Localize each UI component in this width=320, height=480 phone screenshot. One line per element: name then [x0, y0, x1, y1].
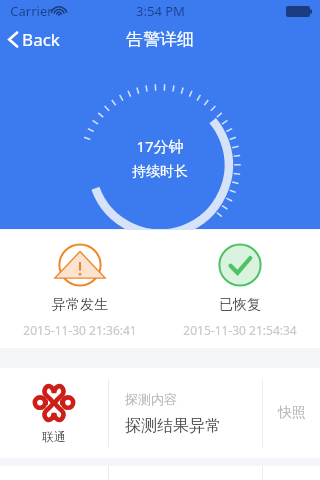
staticText: 持续时长	[132, 163, 188, 181]
staticText: 已恢复	[219, 296, 261, 314]
other: China Unicom	[34, 383, 74, 423]
staticText: 探测内容	[125, 391, 177, 407]
other: Recovered	[218, 243, 262, 287]
staticText: 异常发生	[52, 296, 108, 314]
staticText: 2015-11-30 21:36:41	[23, 322, 137, 338]
button[interactable]: Back	[0, 24, 70, 55]
staticText: Back	[22, 28, 60, 51]
button[interactable]: Alert occurred	[0, 230, 160, 348]
staticText: 快照	[278, 404, 306, 422]
staticText: 17分钟	[136, 136, 184, 156]
staticText: 告警详细	[126, 29, 194, 50]
staticText: 联通	[42, 429, 66, 444]
staticText: 2015-11-30 21:54:34	[183, 322, 297, 338]
staticText: 探测结果异常	[125, 416, 221, 436]
staticText: 3:54 PM	[136, 2, 185, 20]
button[interactable]: Recovered	[160, 230, 320, 348]
staticText: Carrier	[10, 2, 53, 20]
other: Alert occurred	[58, 243, 102, 287]
button[interactable]: China Unicom	[0, 368, 320, 458]
button[interactable]: 快照	[263, 368, 320, 458]
